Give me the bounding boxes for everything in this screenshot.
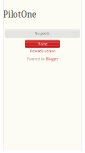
staticText: PilotOne [3, 9, 36, 20]
staticText: View web version [29, 49, 55, 53]
staticText: No posts. [34, 31, 50, 36]
staticText: Powered by [27, 57, 45, 61]
staticText: Home [37, 41, 47, 46]
button[interactable]: View web version [29, 49, 55, 53]
staticText: Blogger [46, 57, 58, 61]
button[interactable]: Blogger [46, 57, 58, 61]
button[interactable]: Home [25, 40, 60, 48]
